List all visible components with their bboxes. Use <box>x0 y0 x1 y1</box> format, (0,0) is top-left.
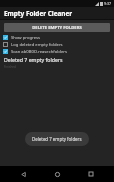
staticText: Log deleted empty folders <box>11 42 63 48</box>
staticText: 9:37 <box>104 1 112 6</box>
button[interactable]: Back <box>12 166 34 182</box>
staticText: DELETE EMPTY FOLDERS <box>32 25 82 31</box>
button[interactable]: Home <box>46 166 68 182</box>
button[interactable]: Recent apps <box>80 166 102 182</box>
staticText: Scan ab0B0O.reasechfolders <box>11 49 68 55</box>
staticText: Deleted 7 empty folders <box>4 56 63 63</box>
button[interactable]: Show progress <box>0 34 114 41</box>
staticText: Show progress <box>11 35 41 41</box>
staticText: Empty Folder Cleaner <box>4 9 73 18</box>
staticText: Deleted 7 empty folders <box>32 136 82 142</box>
button[interactable]: Log deleted empty folders <box>0 41 114 48</box>
button[interactable]: DELETE EMPTY FOLDERS <box>4 23 110 32</box>
staticText: Finished <box>4 65 16 69</box>
button[interactable]: Scan ab0B0O.reasechfolders <box>0 48 114 55</box>
